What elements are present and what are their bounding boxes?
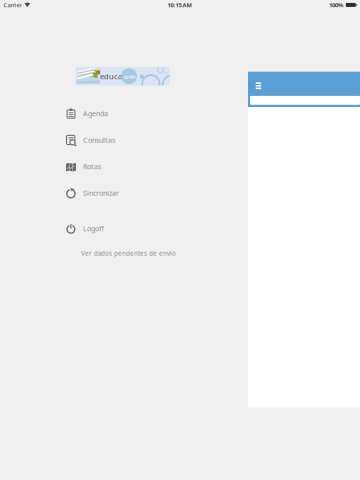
staticText: Carrier <box>3 1 21 9</box>
staticText: Logoff <box>83 223 104 233</box>
button[interactable]: Logoff <box>0 215 360 242</box>
button[interactable]: Consultas <box>0 127 360 153</box>
staticText: Agenda <box>83 109 108 118</box>
staticText: 10:15 AM <box>168 1 192 9</box>
staticText: Rotas <box>83 162 101 171</box>
staticText: web <box>124 72 136 80</box>
staticText: educa <box>100 71 122 81</box>
staticText: Ver dados pendentes de envio <box>81 249 176 258</box>
button[interactable]: Rotas <box>0 153 360 180</box>
button[interactable]: Sincronizar <box>0 180 360 206</box>
staticText: 100% <box>329 1 343 9</box>
staticText: Consultas <box>83 135 115 145</box>
staticText: Sincronizar <box>83 188 119 198</box>
button[interactable]: Agenda <box>0 100 360 127</box>
button[interactable]: Menu <box>252 72 266 92</box>
